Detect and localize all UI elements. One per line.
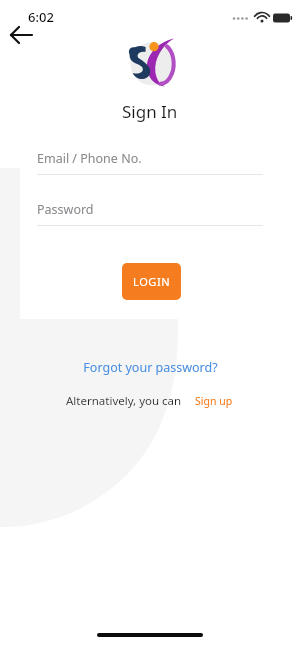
staticText: Sign up <box>195 394 233 408</box>
button[interactable]: Password <box>37 201 263 226</box>
staticText: Password <box>37 201 94 218</box>
button[interactable]: LOGIN <box>122 263 181 300</box>
button[interactable]: Email / Phone No. <box>37 150 263 175</box>
button[interactable]: Back <box>4 18 40 48</box>
staticText: Sign In <box>122 100 178 123</box>
staticText: Email / Phone No. <box>37 150 142 167</box>
staticText: Forgot your password? <box>83 359 218 376</box>
staticText: Alternatively, you can <box>66 393 182 409</box>
button[interactable]: Sign up <box>193 392 235 410</box>
other: Status icons <box>232 10 292 24</box>
staticText: LOGIN <box>133 274 171 289</box>
staticText: 6:02 <box>28 8 54 26</box>
button[interactable]: Forgot your password? <box>77 357 224 378</box>
